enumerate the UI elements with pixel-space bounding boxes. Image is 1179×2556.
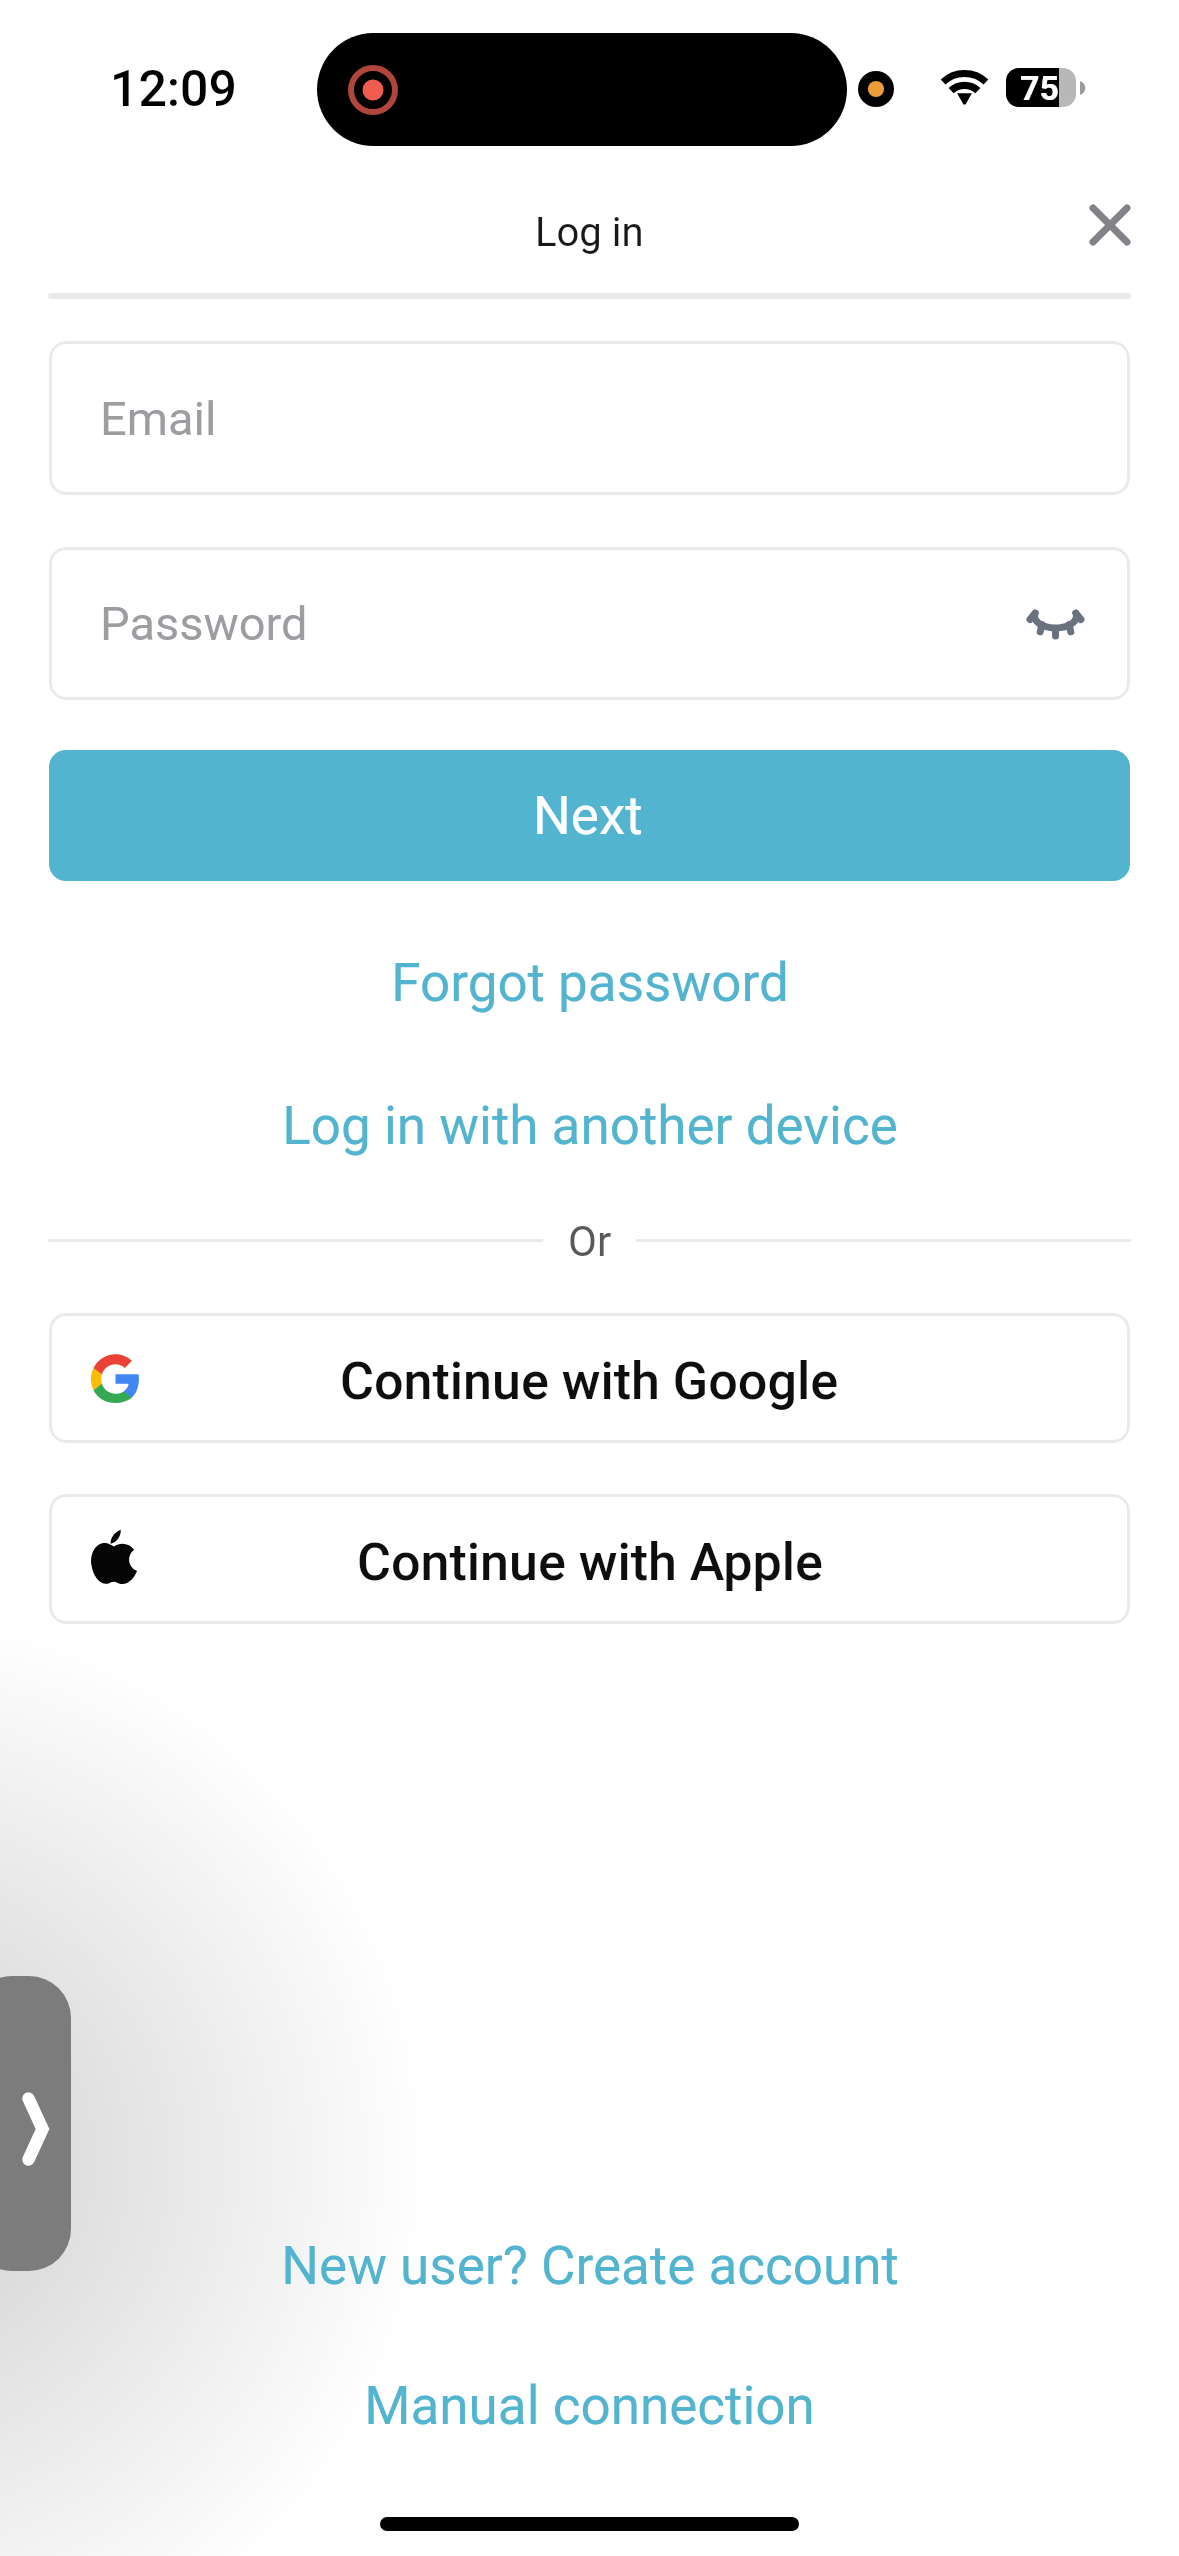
staticText: Log in with another device bbox=[282, 1095, 898, 1157]
staticText: Continue with Google bbox=[340, 1351, 839, 1412]
button[interactable]: Password bbox=[49, 547, 1130, 700]
staticText: 12:09 bbox=[110, 60, 237, 119]
staticText: Forgot password bbox=[391, 952, 789, 1014]
staticText: Log in bbox=[535, 209, 644, 256]
staticText: Password bbox=[100, 596, 308, 651]
button[interactable]: Open drawer bbox=[0, 1976, 71, 2271]
staticText: Continue with Apple bbox=[357, 1532, 823, 1593]
staticText: Next bbox=[533, 785, 643, 847]
button[interactable]: Continue with Apple bbox=[49, 1494, 1130, 1624]
staticText: Email bbox=[100, 391, 217, 446]
staticText: 75 bbox=[1020, 68, 1060, 107]
button[interactable]: Manual connection bbox=[0, 2346, 1179, 2466]
button[interactable]: Next bbox=[49, 750, 1130, 881]
button[interactable]: Forgot password bbox=[0, 923, 1179, 1043]
button[interactable]: Continue with Google bbox=[49, 1313, 1130, 1443]
staticText: New user? Create account bbox=[281, 2235, 899, 2297]
staticText: Manual connection bbox=[364, 2375, 815, 2437]
button[interactable]: New user? Create account bbox=[0, 2206, 1179, 2326]
button[interactable]: Log in with another device bbox=[0, 1066, 1179, 1186]
button[interactable]: Close bbox=[1070, 185, 1150, 265]
button[interactable]: Email bbox=[49, 341, 1130, 495]
button[interactable]: Show password bbox=[1005, 569, 1106, 679]
staticText: Or bbox=[568, 1217, 612, 1266]
